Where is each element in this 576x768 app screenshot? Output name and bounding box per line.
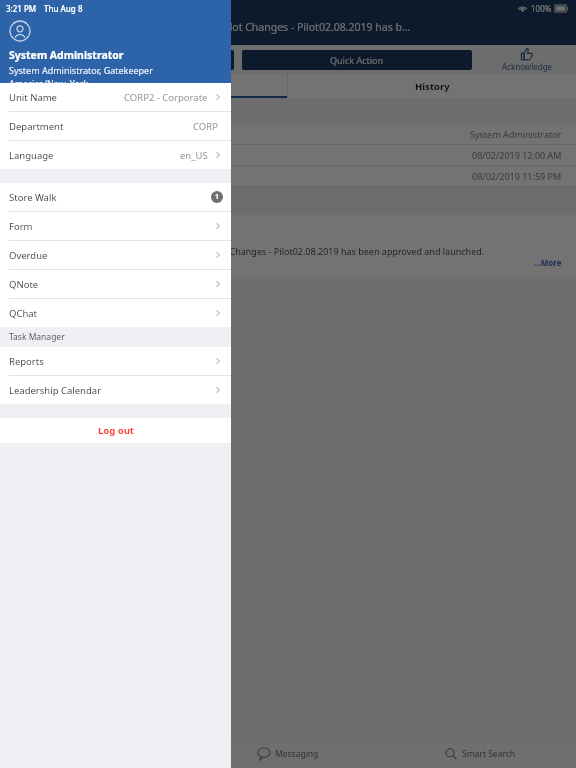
button[interactable]: Form	[0, 212, 231, 240]
staticText: 1	[215, 192, 220, 202]
staticText: Creator Name	[14, 128, 74, 140]
button[interactable]: Acknowledge	[482, 45, 572, 74]
button[interactable]: QNote	[0, 270, 231, 298]
staticText: 08/02/2019 12:00 AM	[472, 149, 562, 161]
button[interactable]: Store Walk	[0, 183, 231, 211]
staticText: Quick Action	[330, 54, 384, 66]
button[interactable]: Department	[0, 112, 231, 140]
button[interactable]: Quick Action	[242, 50, 472, 70]
staticText: QNote	[9, 278, 39, 291]
staticText: 3:21 PM	[6, 3, 37, 14]
button[interactable]: Start Date	[14, 145, 562, 165]
staticText: QChat	[9, 307, 38, 320]
staticText: Form	[9, 220, 33, 233]
button[interactable]: Take Action	[4, 50, 234, 70]
staticText: en_US	[180, 149, 208, 162]
button[interactable]: Language	[0, 141, 231, 169]
staticText: last updated 08/05/2019	[14, 35, 83, 43]
staticText: CORP2 - Corporate	[124, 91, 208, 104]
staticText: System Administrator	[9, 48, 124, 62]
staticText: Take Action	[95, 54, 144, 66]
staticText: System Administrator	[470, 128, 562, 140]
button[interactable]: QChat	[0, 299, 231, 327]
button[interactable]: Creator Name	[14, 124, 562, 144]
button[interactable]: Leadership Calendar	[0, 376, 231, 404]
button[interactable]: History	[288, 74, 576, 98]
staticText: System Administrator, Gatekeeper	[9, 64, 153, 76]
button[interactable]: Reports	[0, 347, 231, 375]
staticText: Summary Details	[14, 108, 95, 121]
staticText: Smart Search	[462, 748, 516, 760]
staticText: Acknowledge	[502, 61, 553, 72]
staticText: Message Content	[14, 199, 97, 212]
staticText: Store Walk	[9, 191, 57, 204]
staticText: History	[415, 80, 450, 93]
button[interactable]: Smart Search	[384, 740, 576, 768]
staticText: Thu Aug 8	[44, 3, 83, 14]
staticText: Department	[9, 120, 64, 133]
staticText: Log out	[98, 424, 134, 437]
button[interactable]: Log out	[0, 418, 231, 443]
staticText: 100%	[531, 3, 552, 14]
staticText: Start Date	[14, 149, 57, 161]
staticText: Messaging	[275, 748, 319, 760]
staticText: Project with title RFLX: 5 Percent Credi…	[14, 245, 485, 257]
staticText: Thanks	[14, 257, 45, 269]
button[interactable]: Details	[0, 74, 287, 98]
button[interactable]: End Date	[14, 166, 562, 186]
staticText: Leadership Calendar	[9, 384, 102, 397]
staticText: Task Manager	[9, 331, 65, 343]
staticText: Overdue	[9, 249, 48, 262]
button[interactable]: Unit Name	[0, 83, 231, 111]
staticText: Details	[127, 80, 160, 93]
staticText: CORP	[193, 120, 218, 133]
staticText: Your project RFLX: 5 Percent Credit Matc…	[14, 20, 411, 34]
button[interactable]: ...More	[534, 257, 562, 268]
staticText: Dear System Administrator	[14, 223, 129, 235]
staticText: America/New_York	[9, 77, 89, 83]
staticText: Reports	[9, 355, 44, 368]
button[interactable]: Messaging	[192, 740, 384, 768]
button[interactable]: Overdue	[0, 241, 231, 269]
staticText: Unit Name	[9, 91, 57, 104]
staticText: 08/02/2019 11:59 PM	[472, 170, 562, 182]
staticText: Language	[9, 149, 54, 162]
